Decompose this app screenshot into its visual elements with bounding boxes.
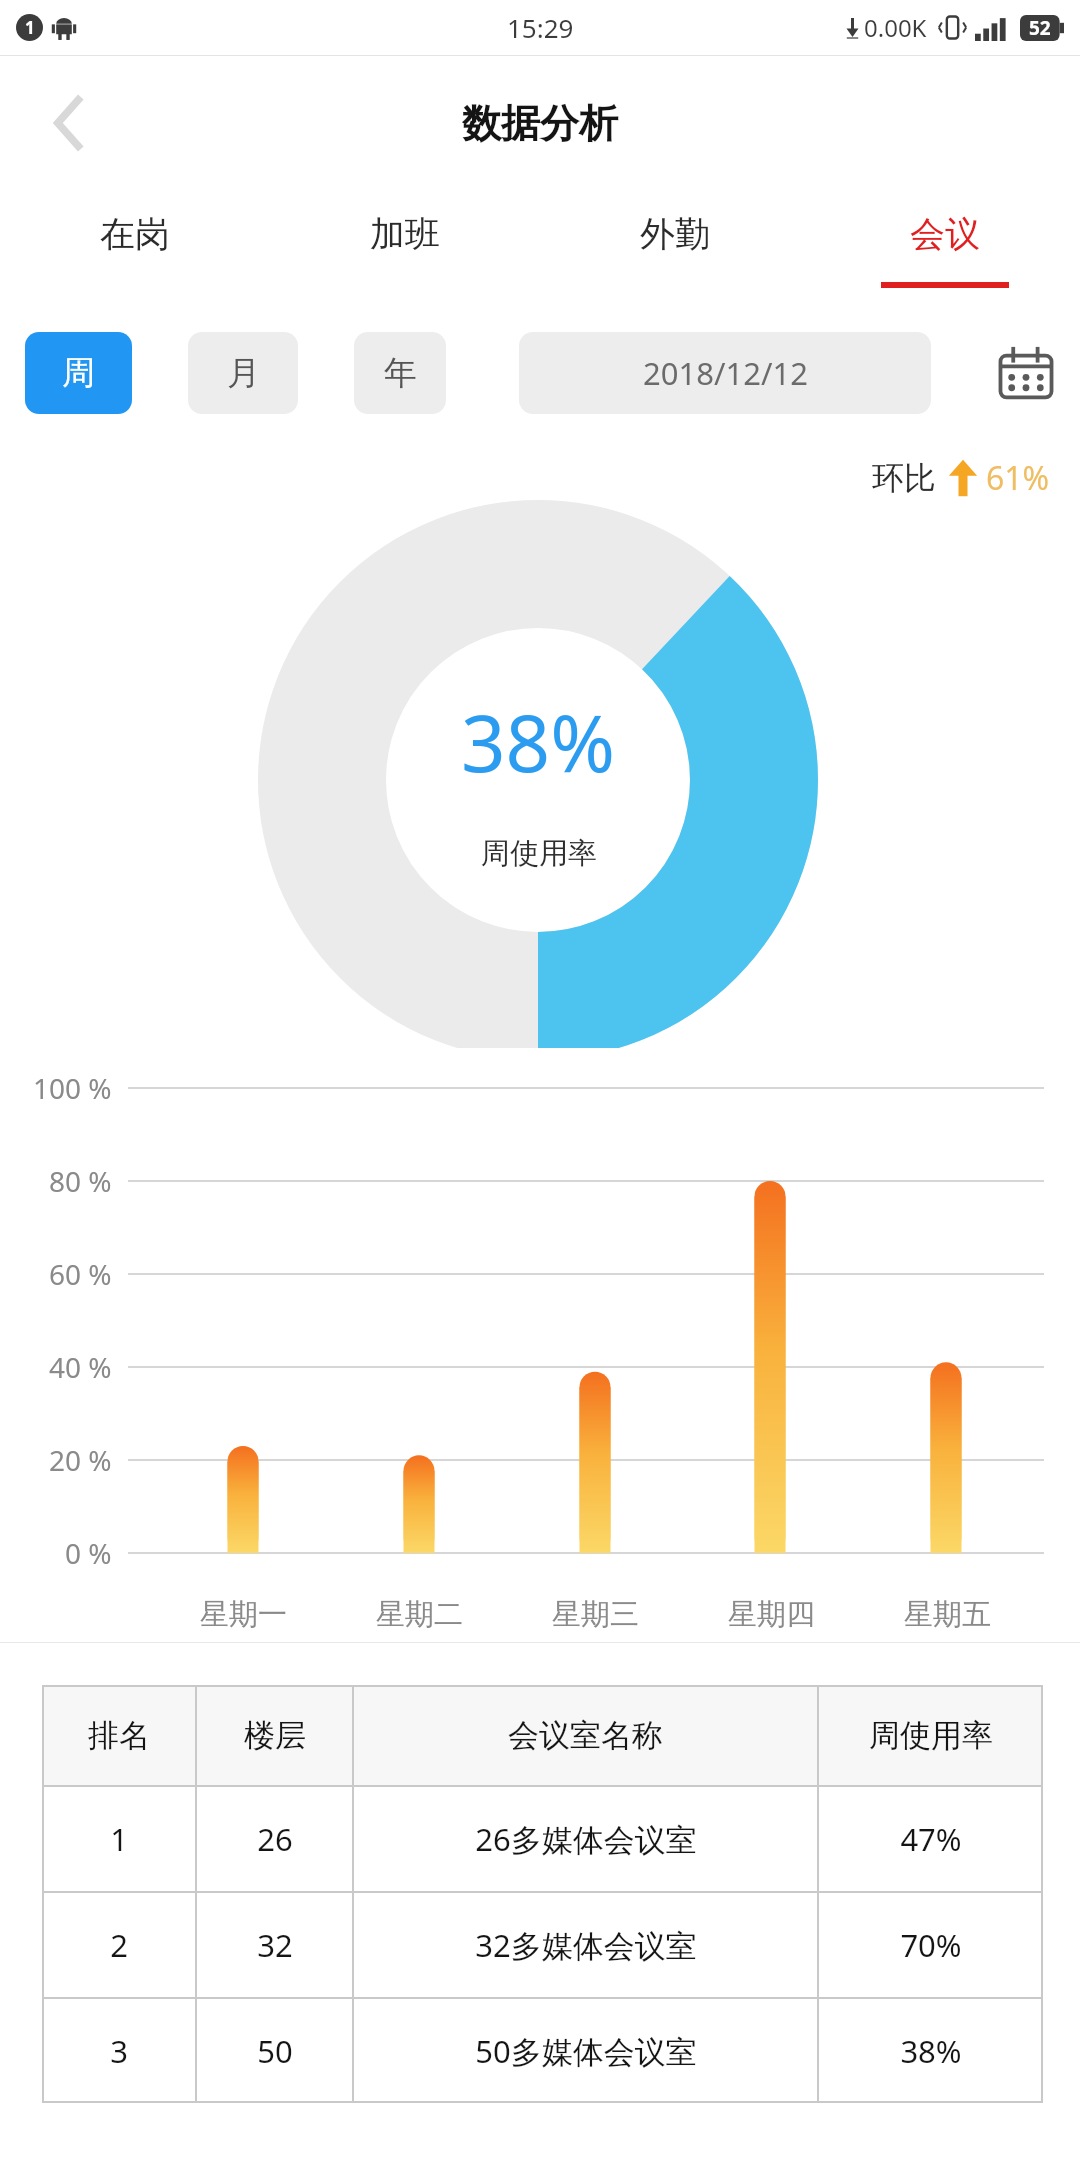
staticText: 2018/12/12: [643, 352, 808, 394]
staticText: 32: [257, 1924, 293, 1966]
staticText: 0 %: [65, 1534, 112, 1572]
staticText: 1: [25, 16, 35, 39]
staticText: 年: [384, 352, 417, 394]
staticText: 61%: [986, 456, 1050, 500]
staticText: 楼层: [244, 1716, 306, 1755]
staticText: 38%: [900, 2030, 962, 2072]
staticText: 会议: [910, 212, 980, 256]
staticText: 月: [227, 352, 260, 394]
button[interactable]: 3: [42, 1999, 1043, 2103]
staticText: 70%: [900, 1924, 962, 1966]
staticText: 52: [1029, 15, 1051, 41]
staticText: 星期四: [728, 1596, 815, 1633]
staticText: 50多媒体会议室: [475, 2030, 697, 2072]
staticText: 周使用率: [481, 835, 597, 872]
staticText: 2: [110, 1924, 128, 1966]
button[interactable]: 外勤: [540, 190, 810, 308]
staticText: 3: [110, 2030, 128, 2072]
button[interactable]: 1: [42, 1787, 1043, 1891]
staticText: 星期二: [376, 1596, 463, 1633]
staticText: 0.00K: [864, 11, 927, 44]
staticText: 15:29: [507, 10, 574, 45]
button[interactable]: 加班: [270, 190, 540, 308]
staticText: 32多媒体会议室: [475, 1924, 697, 1966]
staticText: 星期三: [552, 1596, 639, 1633]
button[interactable]: 月: [188, 332, 298, 414]
staticText: 26: [257, 1818, 293, 1860]
staticText: 星期一: [200, 1596, 287, 1633]
staticText: 星期五: [904, 1596, 991, 1633]
staticText: 40 %: [49, 1348, 112, 1386]
button[interactable]: 在岗: [0, 190, 270, 308]
staticText: 周: [62, 352, 95, 394]
staticText: 排名: [88, 1716, 150, 1755]
staticText: 周使用率: [869, 1716, 993, 1755]
button[interactable]: 周: [25, 332, 132, 414]
staticText: 47%: [900, 1818, 962, 1860]
staticText: 100 %: [33, 1069, 112, 1107]
button[interactable]: Back: [24, 77, 116, 169]
staticText: 1: [110, 1818, 128, 1860]
button[interactable]: 2018/12/12: [519, 332, 931, 414]
button[interactable]: Pick date: [994, 341, 1058, 405]
staticText: 20 %: [49, 1441, 112, 1479]
button[interactable]: 2: [42, 1893, 1043, 1997]
staticText: 会议室名称: [508, 1716, 663, 1755]
button[interactable]: 会议: [810, 190, 1080, 308]
staticText: 在岗: [100, 212, 170, 256]
staticText: 加班: [370, 212, 440, 256]
staticText: 50: [257, 2030, 293, 2072]
staticText: 数据分析: [462, 99, 618, 148]
staticText: 环比: [872, 458, 936, 498]
staticText: 38%: [461, 689, 616, 795]
button[interactable]: 年: [354, 332, 446, 414]
staticText: 外勤: [640, 212, 710, 256]
staticText: 80 %: [49, 1162, 112, 1200]
staticText: 26多媒体会议室: [475, 1818, 697, 1860]
staticText: 60 %: [49, 1255, 112, 1293]
